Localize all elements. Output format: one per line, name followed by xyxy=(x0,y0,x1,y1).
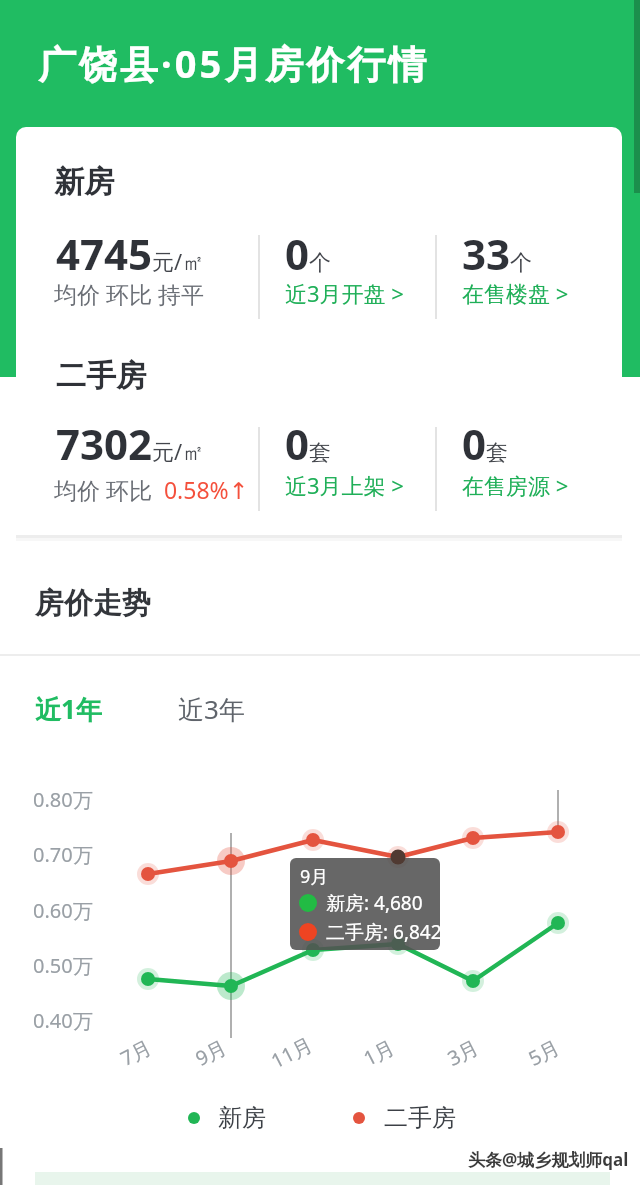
staticText: 33个 xyxy=(462,225,533,282)
staticText: 广饶县·05月房价行情 xyxy=(38,37,430,89)
staticText: 3月 xyxy=(443,1033,483,1072)
staticText: 7302元/㎡ xyxy=(56,415,205,472)
staticText: 新房: 4,680 xyxy=(326,890,423,916)
button[interactable]: 在售楼盘 > xyxy=(16,127,123,157)
staticText: 0.60万 xyxy=(33,897,93,924)
staticText: 1月 xyxy=(359,1033,399,1072)
staticText: 二手房 xyxy=(56,357,146,395)
staticText: 0.80万 xyxy=(33,786,93,813)
staticText: 0.40万 xyxy=(33,1007,93,1034)
button[interactable]: 在售房源 > xyxy=(16,127,123,157)
staticText: 5月 xyxy=(524,1033,564,1072)
staticText: 9月 xyxy=(300,864,329,889)
staticText: 二手房: 6,842 xyxy=(326,919,442,945)
staticText: 4745元/㎡ xyxy=(56,225,205,282)
staticText: 0.70万 xyxy=(33,841,93,868)
staticText: 0个 xyxy=(285,225,332,282)
button[interactable]: 近3月开盘 > xyxy=(16,127,135,157)
button[interactable]: 近3月上架 > xyxy=(16,127,135,157)
staticText: 均价 环比 0.58%↑ xyxy=(54,474,248,505)
staticText: 新房 xyxy=(54,163,114,201)
staticText: 房价走势 xyxy=(35,585,151,622)
staticText: 0.50万 xyxy=(33,952,93,979)
staticText: 均价 环比 持平 xyxy=(54,278,204,309)
staticText: 0套 xyxy=(285,415,332,472)
staticText: 头条@城乡规划师qal xyxy=(468,1148,629,1171)
staticText: 11月 xyxy=(266,1031,317,1074)
staticText: 9月 xyxy=(191,1033,231,1072)
staticText: 7月 xyxy=(116,1033,156,1072)
staticText: 0套 xyxy=(462,415,509,472)
